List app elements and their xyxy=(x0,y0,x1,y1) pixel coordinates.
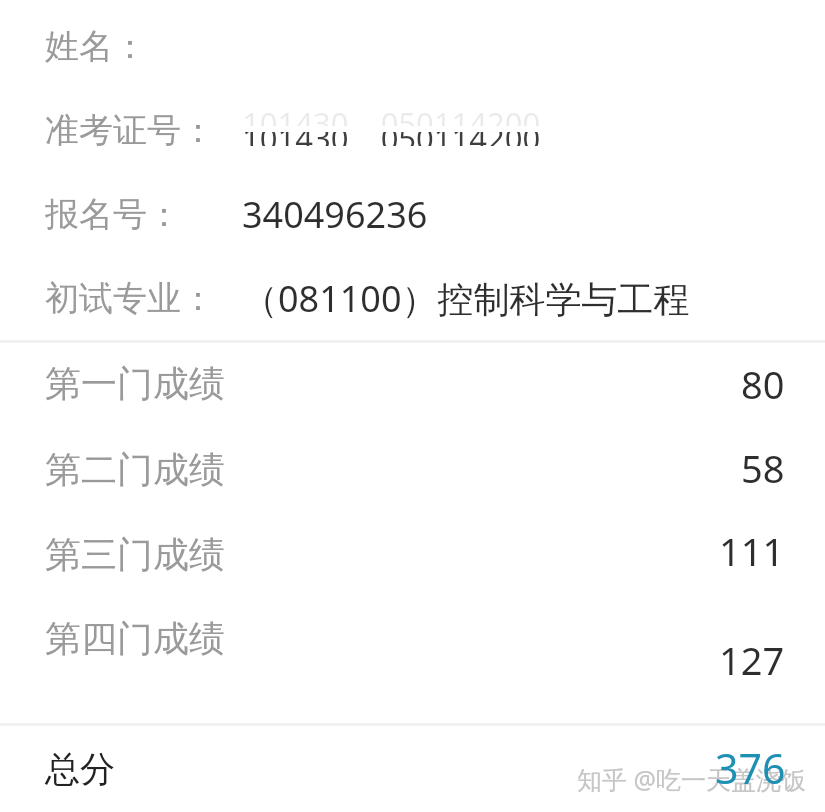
staticText: （081100）控制科学与工程 xyxy=(242,274,690,323)
button[interactable]: 准考证号： xyxy=(0,88,825,172)
staticText: 总分 xyxy=(45,747,115,791)
button[interactable]: 总分 xyxy=(0,726,825,812)
button[interactable]: 姓名： xyxy=(0,4,825,88)
staticText: 准考证号： xyxy=(45,109,215,152)
staticText: 第四门成绩 xyxy=(45,616,225,661)
staticText: 101430 050114200 xyxy=(242,106,541,126)
button[interactable]: 第一门成绩 xyxy=(0,343,825,427)
staticText: 第一门成绩 xyxy=(45,361,225,406)
button[interactable]: 第二门成绩 xyxy=(0,427,825,511)
staticText: 111 xyxy=(719,525,785,577)
staticText: 127 xyxy=(719,634,785,686)
button[interactable]: 报名号： xyxy=(0,172,825,256)
button[interactable]: 第三门成绩 xyxy=(0,511,825,595)
button[interactable]: 第四门成绩 xyxy=(0,595,825,723)
staticText: 80 xyxy=(741,358,785,410)
staticText: 58 xyxy=(741,442,785,494)
staticText: 340496236 xyxy=(242,190,428,239)
staticText: 报名号： xyxy=(45,193,181,236)
staticText: 第二门成绩 xyxy=(45,447,225,492)
staticText: 姓名： xyxy=(45,25,147,68)
staticText: 知乎 @吃一天盖浇饭 xyxy=(577,762,806,796)
staticText: 初试专业： xyxy=(45,277,215,320)
staticText: 第三门成绩 xyxy=(45,532,225,577)
button[interactable]: 初试专业： xyxy=(0,256,825,340)
staticText: 376 xyxy=(715,740,786,796)
staticText: 101430 050114200 xyxy=(242,132,541,146)
